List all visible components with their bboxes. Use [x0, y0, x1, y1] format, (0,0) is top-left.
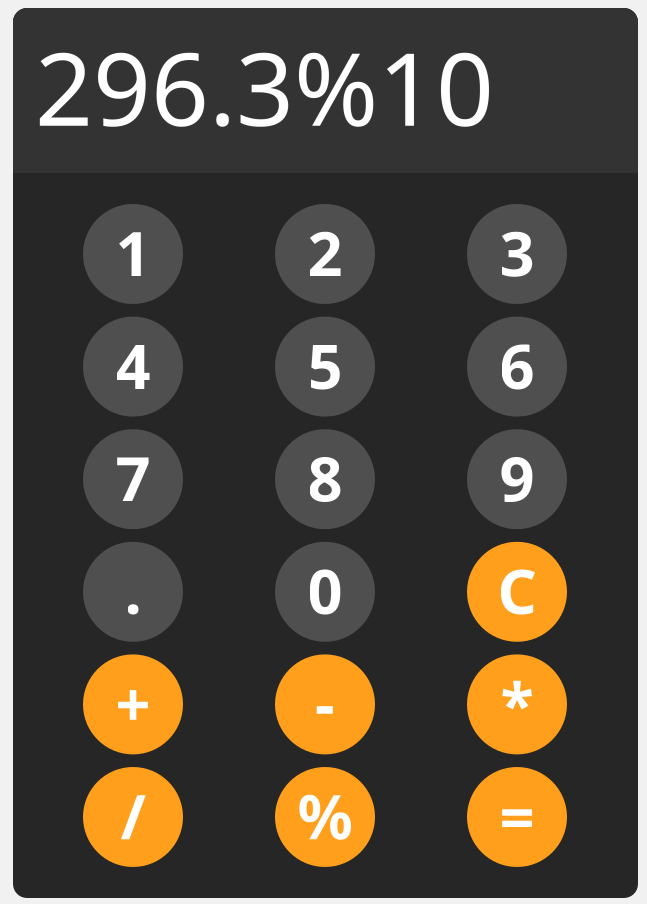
staticText: 0: [307, 550, 342, 631]
button[interactable]: Clear: [467, 542, 567, 642]
staticText: 2: [307, 212, 342, 293]
staticText: %: [297, 775, 352, 856]
button[interactable]: Nine: [467, 429, 567, 529]
staticText: 1: [115, 212, 150, 293]
button[interactable]: Zero: [275, 542, 375, 642]
staticText: 5: [307, 324, 342, 406]
button[interactable]: Decimal point: [83, 542, 183, 642]
staticText: 296.3%10: [35, 19, 494, 154]
button[interactable]: Two: [275, 204, 375, 304]
button[interactable]: Seven: [83, 429, 183, 529]
button[interactable]: Four: [83, 317, 183, 417]
button[interactable]: Divide: [83, 767, 183, 867]
button[interactable]: Three: [467, 204, 567, 304]
staticText: 4: [115, 324, 150, 406]
staticText: 6: [499, 324, 534, 406]
staticText: 9: [499, 437, 534, 518]
button[interactable]: Eight: [275, 429, 375, 529]
button[interactable]: One: [83, 204, 183, 304]
button[interactable]: Minus: [275, 654, 375, 754]
staticText: C: [497, 550, 536, 631]
button[interactable]: Five: [275, 317, 375, 417]
button[interactable]: Multiply: [467, 654, 567, 754]
button[interactable]: Plus: [83, 654, 183, 754]
button[interactable]: Equals: [467, 767, 567, 867]
staticText: -: [315, 662, 335, 744]
staticText: 7: [115, 437, 150, 518]
button[interactable]: Six: [467, 317, 567, 417]
staticText: =: [499, 775, 534, 856]
staticText: 3: [499, 212, 534, 293]
button[interactable]: Percent: [275, 767, 375, 867]
staticText: *: [500, 662, 533, 744]
staticText: .: [124, 550, 141, 631]
staticText: +: [115, 662, 150, 744]
staticText: /: [120, 775, 145, 856]
staticText: 8: [307, 437, 342, 518]
